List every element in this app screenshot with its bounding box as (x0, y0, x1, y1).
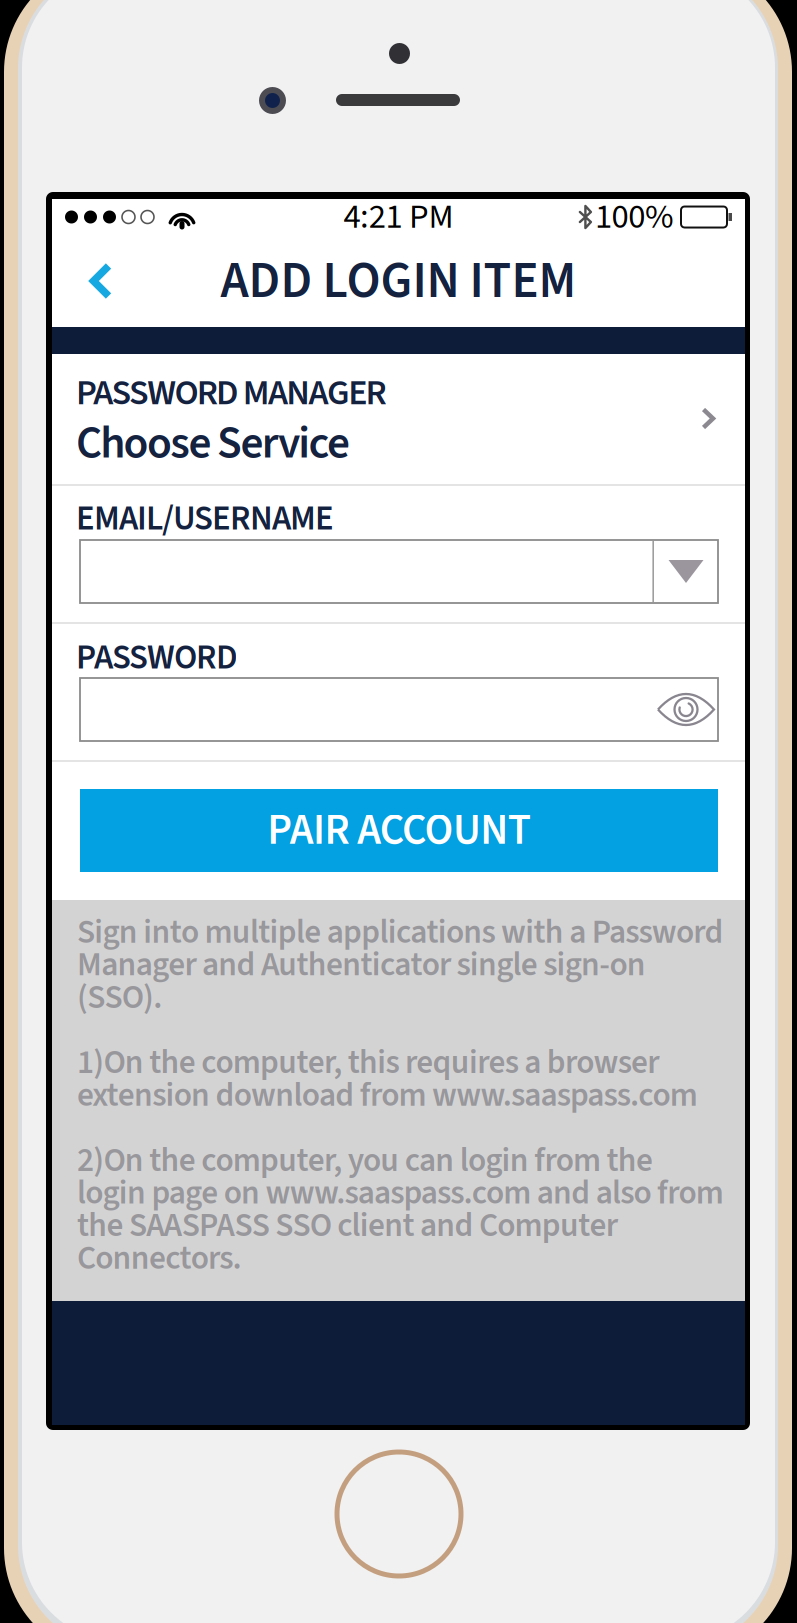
staticText: PASSWORD MANAGER (76, 367, 386, 419)
button[interactable]: Show password (657, 691, 715, 727)
staticText: Connectors. (77, 1235, 241, 1282)
staticText: PAIR ACCOUNT (267, 800, 531, 861)
staticText: Choose Service (76, 411, 350, 476)
staticText: 2)On the computer, you can login from th… (77, 1137, 653, 1184)
button[interactable]: PAIR ACCOUNT (80, 789, 718, 872)
staticText: Manager and Authenticator single sign-on (77, 941, 646, 989)
staticText: 1)On the computer, this requires a brows… (77, 1039, 659, 1086)
staticText: PASSWORD (76, 633, 238, 682)
staticText: extension download from www.saaspass.com (77, 1072, 698, 1119)
staticText: ADD LOGIN ITEM (220, 245, 576, 317)
staticText: Sign into multiple applications with a P… (77, 909, 723, 956)
button[interactable]: Choose a saved email address (668, 560, 703, 583)
staticText: EMAIL/USERNAME (76, 494, 334, 543)
button[interactable]: Back (69, 249, 133, 313)
button[interactable]: PASSWORD MANAGER (52, 354, 745, 483)
staticText: login page on www.saaspass.com and also … (77, 1169, 724, 1217)
staticText: (SSO). (77, 974, 162, 1021)
staticText: 100% (595, 192, 674, 242)
staticText: 4:21 PM (343, 192, 454, 242)
staticText: the SAASPASS SSO client and Computer (77, 1202, 618, 1249)
